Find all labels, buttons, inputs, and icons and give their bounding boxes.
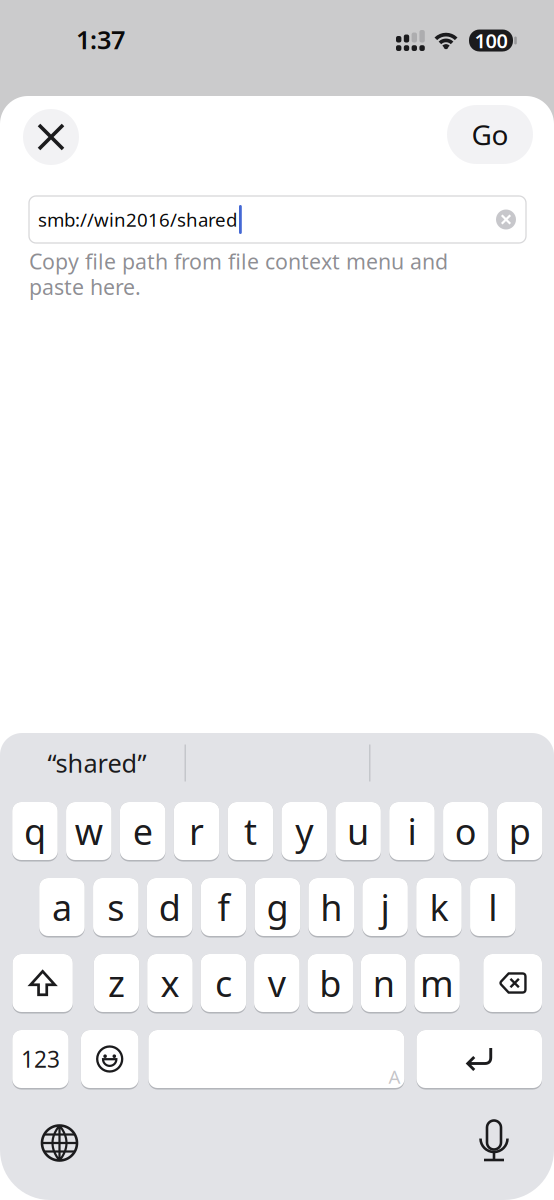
staticText: o [455,807,477,855]
button[interactable]: Next keyboard [37,1121,81,1165]
button[interactable]: t [228,802,273,861]
button[interactable]: v [254,954,300,1013]
button[interactable]: w [66,802,112,861]
staticText: y [295,807,313,855]
staticText: p [509,807,531,855]
button[interactable]: Clear text [496,209,516,229]
button[interactable]: Go [447,105,533,164]
button[interactable]: o [443,802,489,861]
staticText: Copy file path from file context menu an… [29,247,448,275]
button[interactable]: Shift [12,954,73,1013]
staticText: “shared” [47,746,146,780]
button[interactable]: n [361,954,406,1013]
staticText: c [215,959,232,1007]
button[interactable]: y [281,802,327,861]
staticText: z [108,959,125,1007]
staticText: paste here. [29,272,141,301]
staticText: Go [471,116,508,153]
button[interactable]: f [201,878,246,937]
button[interactable]: Return [416,1030,542,1089]
staticText: t [244,807,257,855]
button[interactable]: r [174,802,219,861]
staticText: h [320,883,342,931]
staticText: e [133,807,153,855]
staticText: b [319,959,341,1007]
button[interactable]: c [201,954,246,1013]
button[interactable]: x [147,954,193,1013]
button[interactable]: Dictate [477,1119,511,1163]
button[interactable]: z [94,954,139,1013]
staticText: u [347,807,369,855]
button[interactable]: Close [23,109,79,165]
button[interactable]: d [147,878,192,937]
staticText: s [107,883,124,931]
staticText: d [159,883,181,931]
button[interactable]: i [389,802,435,861]
button[interactable]: “shared” [5,743,189,783]
button[interactable]: Space [148,1030,404,1089]
staticText: 1:37 [76,22,125,56]
button[interactable]: b [307,954,353,1013]
button[interactable]: a [39,878,85,937]
staticText: x [160,959,179,1007]
button[interactable]: j [362,878,408,937]
staticText: i [407,807,416,855]
staticText: f [217,883,229,931]
button[interactable]: s [93,878,139,937]
button[interactable]: q [12,802,58,861]
button[interactable]: e [120,802,165,861]
staticText: j [381,883,390,931]
button[interactable]: Emoji [81,1030,138,1089]
button[interactable]: k [416,878,462,937]
staticText: A [388,1064,400,1089]
staticText: a [52,883,72,931]
staticText: n [373,959,395,1007]
staticText: q [24,807,46,855]
button[interactable]: l [470,878,516,937]
button[interactable]: Delete [483,954,542,1013]
staticText: r [189,807,204,855]
staticText: m [420,959,454,1007]
button[interactable]: 123 [12,1030,69,1089]
staticText: g [266,883,288,931]
staticText: v [268,959,286,1007]
staticText: 100 [474,27,507,54]
button[interactable]: p [497,802,542,861]
staticText: smb://win2016/shared [38,207,237,232]
staticText: 123 [21,1044,60,1074]
staticText: k [429,883,448,931]
button[interactable]: m [414,954,460,1013]
staticText: w [75,807,103,855]
button[interactable]: h [308,878,354,937]
button[interactable]: u [335,802,381,861]
button[interactable]: g [255,878,300,937]
staticText: l [488,883,497,931]
